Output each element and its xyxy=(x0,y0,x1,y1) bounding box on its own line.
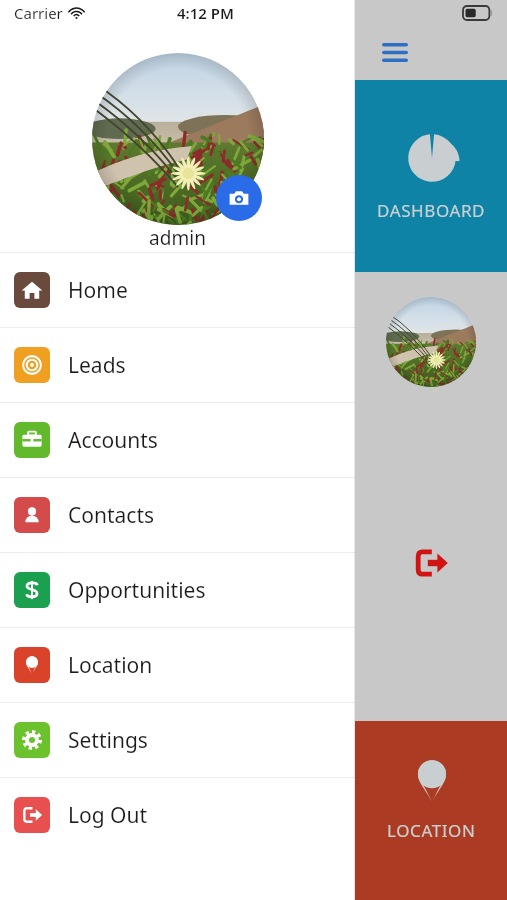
other: Accounts xyxy=(14,422,50,458)
button[interactable]: Leads xyxy=(0,328,355,403)
button[interactable]: DASHBOARD xyxy=(355,80,507,272)
staticText: Home xyxy=(68,276,128,305)
button[interactable]: Accounts xyxy=(0,403,355,478)
other: Location xyxy=(14,647,50,683)
button[interactable]: Change profile photo xyxy=(216,175,262,221)
button[interactable]: Location xyxy=(0,628,355,703)
button[interactable]: LOCATION xyxy=(355,721,507,900)
staticText: admin xyxy=(0,225,355,251)
other: Leads xyxy=(14,347,50,383)
button[interactable]: Contacts xyxy=(0,478,355,553)
staticText: Leads xyxy=(68,351,126,380)
other: Log Out xyxy=(14,797,50,833)
staticText: Settings xyxy=(68,726,148,755)
other: Opportunities xyxy=(14,572,50,608)
button[interactable]: Opportunities xyxy=(0,553,355,628)
staticText: Location xyxy=(68,651,153,680)
staticText: Log Out xyxy=(68,801,148,830)
staticText: 4:12 PM xyxy=(177,3,234,23)
staticText: Contacts xyxy=(68,501,155,530)
button[interactable]: Settings xyxy=(0,703,355,778)
other: Contacts xyxy=(14,497,50,533)
button[interactable]: Open navigation menu xyxy=(355,26,507,80)
button[interactable]: Log out xyxy=(355,412,507,721)
button[interactable]: Log Out xyxy=(0,778,355,852)
button[interactable]: Home xyxy=(0,253,355,328)
staticText: LOCATION xyxy=(387,819,476,842)
other: Home xyxy=(14,272,50,308)
staticText: DASHBOARD xyxy=(377,199,486,222)
other: Settings xyxy=(14,722,50,758)
staticText: Carrier xyxy=(14,3,63,23)
staticText: Opportunities xyxy=(68,576,206,605)
staticText: Accounts xyxy=(68,426,158,455)
